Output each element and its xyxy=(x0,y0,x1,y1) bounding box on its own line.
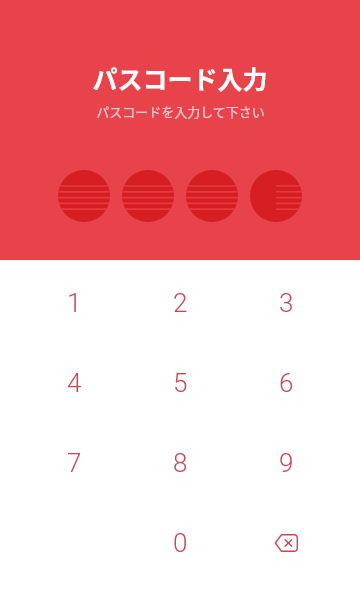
staticText: 8 xyxy=(173,448,188,478)
staticText: パスコードを入力して下さい xyxy=(96,102,265,121)
button[interactable]: 7 xyxy=(34,423,114,503)
staticText: 0 xyxy=(173,528,188,558)
button[interactable]: Backspace xyxy=(246,503,326,583)
staticText: 5 xyxy=(173,368,188,398)
staticText: 7 xyxy=(67,448,82,478)
staticText: 2 xyxy=(173,288,188,318)
button[interactable]: 4 xyxy=(34,343,114,423)
button[interactable]: 2 xyxy=(140,263,220,343)
staticText: 6 xyxy=(279,368,294,398)
button[interactable]: 5 xyxy=(140,343,220,423)
button[interactable]: 6 xyxy=(246,343,326,423)
button[interactable]: 3 xyxy=(246,263,326,343)
staticText: 3 xyxy=(279,288,294,318)
button[interactable]: 9 xyxy=(246,423,326,503)
staticText: 1 xyxy=(67,288,82,318)
button[interactable]: 8 xyxy=(140,423,220,503)
button[interactable]: 1 xyxy=(34,263,114,343)
staticText: 4 xyxy=(67,368,82,398)
staticText: 9 xyxy=(279,448,294,478)
button[interactable]: 0 xyxy=(140,503,220,583)
staticText: パスコード入力 xyxy=(92,60,268,96)
